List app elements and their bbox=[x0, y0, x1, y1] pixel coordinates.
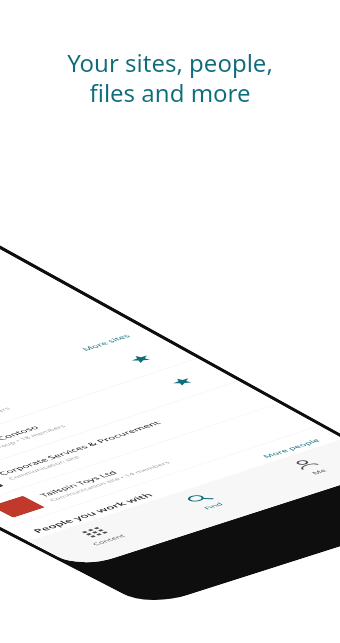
staticText: Private group • 18 members bbox=[0, 423, 68, 459]
staticText: People you work with bbox=[30, 491, 156, 534]
staticText: Me bbox=[309, 468, 329, 476]
staticText: More sites bbox=[79, 332, 133, 352]
staticText: Team site • 24 members bbox=[0, 406, 12, 437]
staticText: Communication site • 14 members bbox=[47, 460, 172, 502]
staticText: More people bbox=[260, 437, 322, 459]
staticText: Tailspin Toys Ltd bbox=[37, 469, 120, 498]
staticText: Your sites, people, files and more bbox=[67, 46, 273, 109]
staticText: Maria @ Contoso bbox=[0, 424, 42, 455]
staticText: Content bbox=[90, 533, 128, 547]
button[interactable]: Maria @ Contoso bbox=[0, 358, 239, 486]
button[interactable]: Me bbox=[244, 443, 340, 491]
staticText: Communication site bbox=[6, 454, 81, 481]
button[interactable]: More sites bbox=[0, 327, 149, 439]
button[interactable]: Find bbox=[139, 477, 270, 525]
staticText: Corporate Services & Procurement bbox=[0, 419, 163, 476]
staticText: Find bbox=[201, 501, 226, 511]
button[interactable]: Contoso Portal bbox=[0, 335, 197, 464]
button[interactable]: Content bbox=[35, 512, 165, 558]
button[interactable]: Tailspin Toys Ltd bbox=[0, 403, 319, 529]
button[interactable]: Corporate Services & Procurement bbox=[0, 381, 279, 507]
